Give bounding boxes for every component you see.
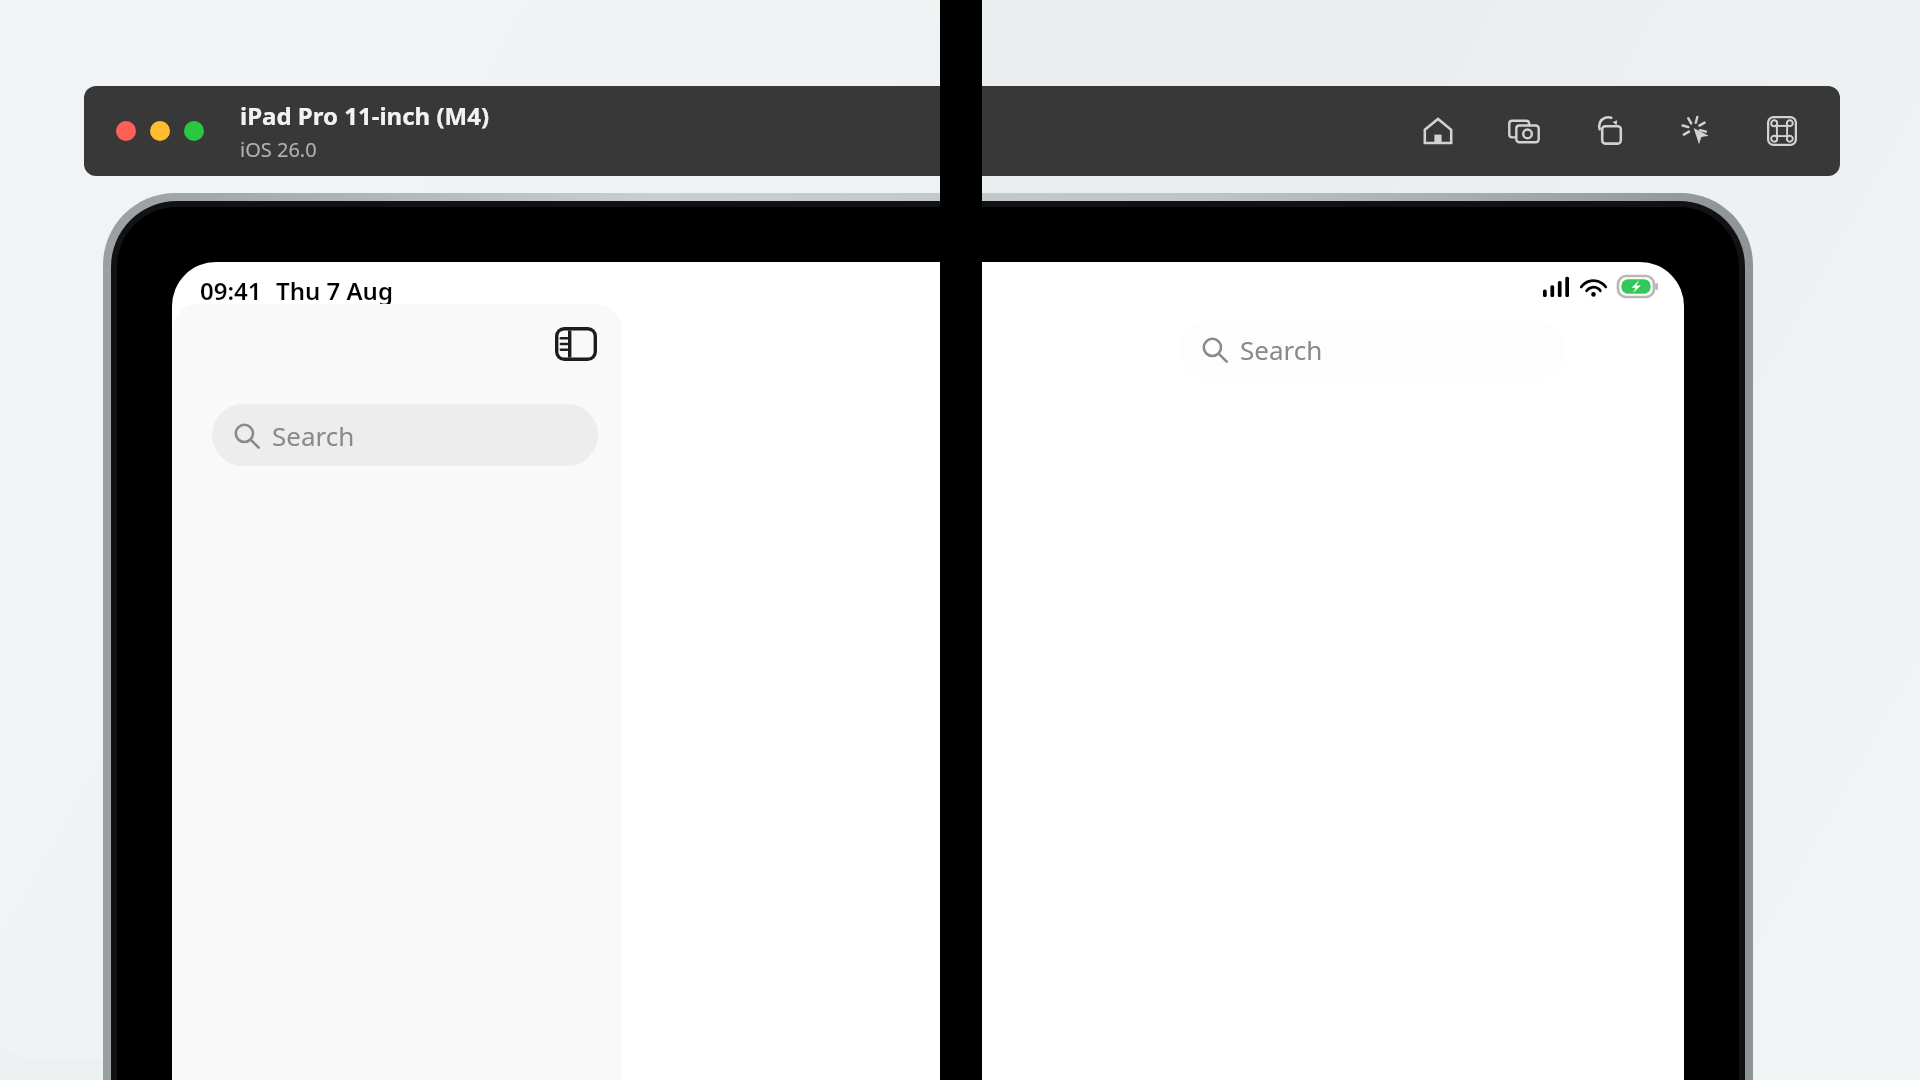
button[interactable]: Search	[1180, 320, 1566, 378]
button[interactable]: Toggle sidebar	[552, 324, 600, 364]
button[interactable]: Search	[212, 404, 598, 466]
button[interactable]: Keyboard shortcuts	[1760, 109, 1804, 153]
staticText: Thu 7 Aug	[276, 274, 393, 307]
staticText: iOS 26.0	[240, 136, 317, 163]
button[interactable]: Close	[116, 121, 136, 141]
staticText: Search	[272, 418, 355, 453]
button[interactable]: Touch	[1674, 109, 1718, 153]
staticText: Search	[1240, 332, 1323, 367]
staticText: iPad Pro 11-inch (M4)	[240, 99, 490, 132]
button[interactable]: Screenshot	[1502, 109, 1546, 153]
button[interactable]: Home	[1416, 109, 1460, 153]
staticText: 09:41	[200, 274, 262, 307]
button[interactable]: Zoom	[184, 121, 204, 141]
button[interactable]: Rotate	[1588, 109, 1632, 153]
button[interactable]: Minimize	[150, 121, 170, 141]
